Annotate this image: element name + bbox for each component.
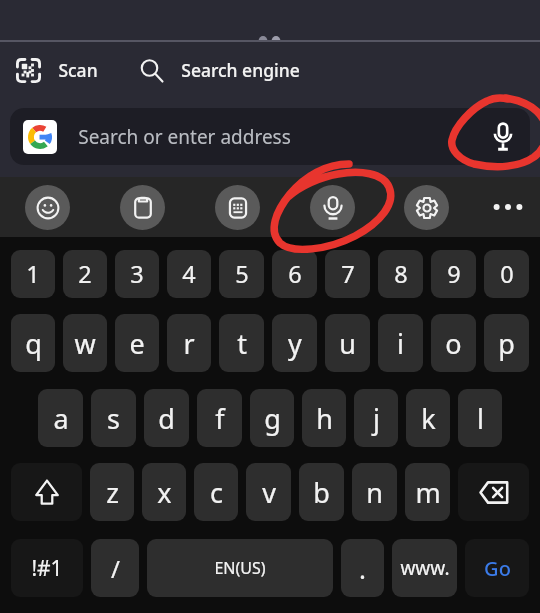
- staticText: e: [129, 325, 145, 362]
- button[interactable]: c: [194, 463, 238, 521]
- button[interactable]: w: [63, 314, 107, 372]
- staticText: l: [477, 400, 484, 437]
- button[interactable]: 5: [219, 250, 264, 298]
- button[interactable]: q: [11, 314, 55, 372]
- staticText: m: [415, 474, 441, 511]
- button[interactable]: Settings: [404, 185, 449, 230]
- button[interactable]: Emoji: [25, 185, 70, 230]
- staticText: Search engine: [181, 58, 300, 82]
- staticText: www.: [400, 555, 450, 581]
- staticText: !#1: [31, 554, 63, 583]
- staticText: q: [25, 325, 42, 362]
- staticText: 0: [500, 258, 514, 290]
- button[interactable]: x: [142, 463, 186, 521]
- button[interactable]: Voice search: [476, 110, 530, 164]
- button[interactable]: g: [250, 389, 294, 447]
- staticText: k: [421, 400, 436, 437]
- button[interactable]: 6: [272, 250, 317, 298]
- staticText: c: [210, 474, 223, 511]
- button[interactable]: d: [144, 389, 189, 447]
- button[interactable]: Shift: [11, 463, 82, 521]
- staticText: o: [445, 325, 462, 362]
- staticText: 8: [394, 258, 408, 290]
- staticText: b: [313, 474, 330, 511]
- staticText: Search or enter address: [78, 124, 291, 150]
- staticText: d: [158, 400, 175, 437]
- staticText: 7: [341, 258, 355, 290]
- button[interactable]: !#1: [11, 539, 83, 597]
- button[interactable]: s: [91, 389, 136, 447]
- staticText: v: [262, 474, 276, 511]
- staticText: 4: [182, 258, 196, 290]
- button[interactable]: Search or enter address: [10, 108, 530, 165]
- button[interactable]: m: [405, 463, 450, 521]
- button[interactable]: 4: [167, 250, 211, 298]
- button[interactable]: z: [90, 463, 134, 521]
- button[interactable]: b: [299, 463, 344, 521]
- staticText: .: [359, 551, 366, 586]
- button[interactable]: j: [354, 389, 398, 447]
- staticText: f: [215, 400, 225, 437]
- button[interactable]: Backspace: [458, 463, 529, 521]
- staticText: x: [157, 474, 172, 511]
- staticText: p: [498, 325, 515, 362]
- staticText: 1: [26, 258, 40, 290]
- staticText: t: [237, 325, 247, 362]
- staticText: 5: [235, 258, 249, 290]
- button[interactable]: h: [302, 389, 346, 447]
- button[interactable]: 9: [431, 250, 476, 298]
- button[interactable]: 0: [484, 250, 529, 298]
- button[interactable]: 1: [11, 250, 55, 298]
- staticText: EN(US): [214, 557, 266, 579]
- button[interactable]: EN(US): [147, 539, 333, 597]
- button[interactable]: e: [115, 314, 159, 372]
- button[interactable]: l: [458, 389, 502, 447]
- staticText: Scan: [58, 58, 98, 82]
- button[interactable]: t: [219, 314, 264, 372]
- button[interactable]: 2: [63, 250, 107, 298]
- button[interactable]: i: [378, 314, 423, 372]
- staticText: r: [183, 325, 195, 362]
- button[interactable]: p: [484, 314, 529, 372]
- button[interactable]: Clipboard: [120, 185, 165, 230]
- button[interactable]: Search engine: [139, 50, 300, 90]
- staticText: 3: [130, 258, 144, 290]
- button[interactable]: n: [352, 463, 397, 521]
- button[interactable]: .: [341, 539, 384, 597]
- button[interactable]: r: [167, 314, 211, 372]
- staticText: a: [53, 400, 69, 437]
- button[interactable]: a: [38, 389, 83, 447]
- button[interactable]: 7: [325, 250, 370, 298]
- staticText: /: [111, 552, 120, 585]
- staticText: z: [106, 474, 119, 511]
- staticText: i: [397, 325, 404, 362]
- button[interactable]: 3: [115, 250, 159, 298]
- staticText: 2: [78, 258, 92, 290]
- staticText: 9: [447, 258, 461, 290]
- staticText: g: [264, 400, 281, 437]
- button[interactable]: v: [246, 463, 291, 521]
- staticText: s: [107, 400, 120, 437]
- button[interactable]: k: [406, 389, 450, 447]
- button[interactable]: Voice input: [310, 185, 355, 230]
- button[interactable]: Scan: [16, 50, 98, 90]
- staticText: n: [366, 474, 383, 511]
- staticText: 6: [288, 258, 302, 290]
- button[interactable]: f: [197, 389, 242, 447]
- button[interactable]: www.: [392, 539, 457, 597]
- button[interactable]: u: [325, 314, 370, 372]
- button[interactable]: Keypad: [215, 185, 260, 230]
- button[interactable]: o: [431, 314, 476, 372]
- button[interactable]: More options: [485, 184, 530, 229]
- staticText: Go: [484, 555, 511, 582]
- button[interactable]: /: [91, 539, 139, 597]
- staticText: j: [373, 400, 380, 437]
- button[interactable]: Go: [465, 539, 529, 597]
- staticText: u: [339, 325, 356, 362]
- staticText: w: [74, 325, 96, 362]
- button[interactable]: 8: [378, 250, 423, 298]
- staticText: y: [288, 325, 302, 362]
- staticText: h: [316, 400, 333, 437]
- button[interactable]: y: [272, 314, 317, 372]
